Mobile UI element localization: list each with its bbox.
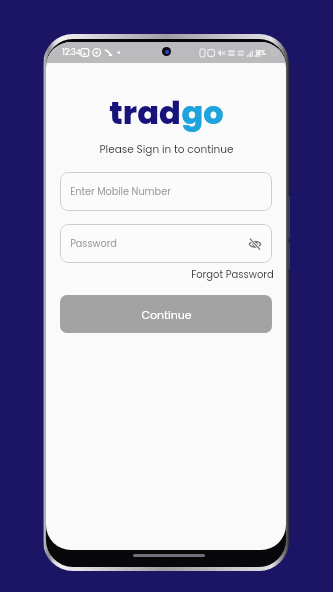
- button[interactable]: Enter Mobile Number: [60, 172, 272, 211]
- staticText: Forgot Password: [191, 267, 274, 281]
- staticText: Enter Mobile Number: [70, 185, 171, 199]
- staticText: trad: [109, 90, 181, 135]
- button[interactable]: Continue: [60, 295, 272, 333]
- staticText: go: [181, 90, 224, 135]
- staticText: Please Sign in to continue: [99, 142, 234, 157]
- button[interactable]: Show password: [247, 236, 263, 252]
- button[interactable]: Password: [60, 224, 272, 263]
- staticText: Continue: [141, 307, 192, 322]
- button[interactable]: Forgot Password: [191, 267, 274, 281]
- staticText: 12:34: [62, 47, 81, 58]
- staticText: 9%: [255, 47, 266, 57]
- staticText: Password: [70, 237, 117, 251]
